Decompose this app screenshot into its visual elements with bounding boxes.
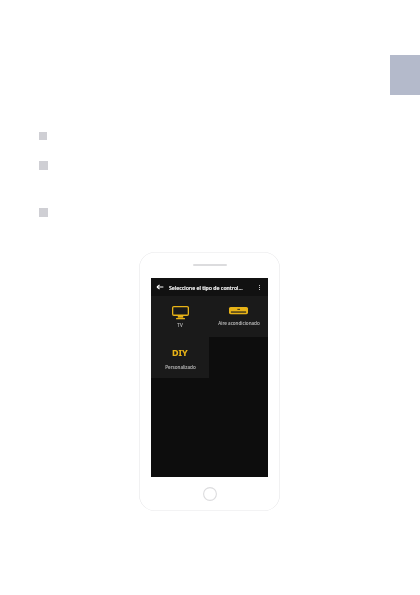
staticText: TV <box>177 322 183 328</box>
button[interactable]: DIY <box>151 337 209 378</box>
staticText: DIY <box>172 346 188 358</box>
button[interactable]: TV <box>151 296 209 337</box>
staticText: Aire acondicionado <box>218 320 260 326</box>
staticText: Seleccione el tipo de control... <box>169 284 250 291</box>
button[interactable]: Back <box>151 278 169 296</box>
button[interactable]: More options <box>250 278 268 296</box>
staticText: Personalizado <box>165 364 196 370</box>
button[interactable]: Aire acondicionado <box>209 296 268 337</box>
